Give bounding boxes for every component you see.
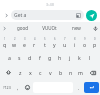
- staticText: w: [12, 41, 17, 48]
- button[interactable]: v: [46, 66, 55, 79]
- button[interactable]: VUUOt: [36, 22, 63, 34]
- staticText: ?123: [3, 85, 11, 90]
- button[interactable]: x: [26, 66, 35, 79]
- staticText: y: [53, 41, 56, 48]
- button[interactable]: Enter: [84, 82, 99, 93]
- staticText: Get a: [14, 12, 75, 19]
- staticText: o: [83, 41, 87, 48]
- button[interactable]: b: [56, 66, 65, 79]
- staticText: a: [8, 54, 11, 61]
- button[interactable]: new: [63, 22, 90, 34]
- button[interactable]: 4: [30, 35, 39, 49]
- staticText: 3:48: [46, 2, 54, 7]
- staticText: 9: [84, 37, 86, 41]
- button[interactable]: .: [74, 81, 83, 94]
- staticText: v: [49, 69, 52, 76]
- button[interactable]: Backspace: [86, 66, 99, 79]
- button[interactable]: Get a: [11, 10, 84, 20]
- staticText: u: [63, 41, 67, 48]
- staticText: VUUOt: [42, 25, 57, 31]
- button[interactable]: 1: [1, 35, 9, 49]
- button[interactable]: h: [55, 51, 64, 64]
- button[interactable]: Attach: [75, 12, 81, 18]
- staticText: x: [29, 69, 32, 76]
- button[interactable]: j: [65, 51, 74, 64]
- staticText: h: [58, 54, 62, 61]
- staticText: c: [39, 69, 42, 76]
- staticText: 7: [64, 37, 66, 41]
- button[interactable]: a: [5, 51, 14, 64]
- button[interactable]: Expand: [2, 11, 10, 19]
- button[interactable]: 8: [70, 35, 79, 49]
- staticText: t: [44, 41, 46, 48]
- staticText: l: [89, 54, 91, 61]
- button[interactable]: d: [25, 51, 34, 64]
- button[interactable]: 5: [40, 35, 49, 49]
- button[interactable]: 2: [10, 35, 19, 49]
- staticText: i: [74, 41, 76, 48]
- staticText: 5: [44, 37, 46, 41]
- button[interactable]: m: [76, 66, 85, 79]
- button[interactable]: 0: [90, 35, 99, 49]
- button[interactable]: g: [45, 51, 54, 64]
- staticText: p: [93, 41, 97, 48]
- button[interactable]: Send: [86, 10, 97, 21]
- button[interactable]: ,: [13, 81, 22, 94]
- button[interactable]: n: [66, 66, 75, 79]
- staticText: z: [19, 69, 22, 76]
- staticText: b: [59, 69, 63, 76]
- staticText: d: [28, 54, 32, 61]
- staticText: q: [3, 41, 7, 48]
- button[interactable]: f: [35, 51, 44, 64]
- button[interactable]: Voice input: [90, 22, 100, 34]
- button[interactable]: 7: [60, 35, 69, 49]
- button[interactable]: Shift: [1, 66, 15, 79]
- staticText: n: [69, 69, 73, 76]
- button[interactable]: 9: [80, 35, 89, 49]
- staticText: 3: [24, 37, 26, 41]
- button[interactable]: z: [16, 66, 25, 79]
- staticText: m: [78, 69, 83, 76]
- staticText: 6: [54, 37, 56, 41]
- button[interactable]: l: [85, 51, 94, 64]
- button[interactable]: 3: [20, 35, 29, 49]
- button[interactable]: c: [36, 66, 45, 79]
- button[interactable]: s: [15, 51, 24, 64]
- staticText: 4: [34, 37, 36, 41]
- staticText: new: [72, 25, 81, 31]
- staticText: .: [78, 85, 80, 91]
- button[interactable]: good: [9, 22, 36, 34]
- staticText: 0: [94, 37, 96, 41]
- staticText: f: [39, 54, 41, 61]
- button[interactable]: k: [75, 51, 84, 64]
- staticText: 8: [74, 37, 76, 41]
- staticText: 1: [4, 37, 6, 41]
- staticText: ,: [17, 85, 19, 91]
- button[interactable]: More suggestions: [0, 22, 9, 34]
- staticText: good: [17, 25, 28, 31]
- staticText: g: [48, 54, 52, 61]
- staticText: r: [33, 41, 36, 48]
- staticText: e: [23, 41, 26, 48]
- staticText: j: [69, 54, 71, 61]
- button[interactable]: 6: [50, 35, 59, 49]
- staticText: s: [18, 54, 21, 61]
- button[interactable]: Symbols: [1, 81, 12, 94]
- button[interactable]: Emoji: [23, 81, 32, 94]
- staticText: 2: [14, 37, 16, 41]
- staticText: k: [78, 54, 81, 61]
